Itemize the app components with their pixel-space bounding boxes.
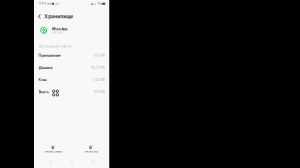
button[interactable]: Очистить кэш (72, 140, 110, 157)
button[interactable]: Очистить данные (34, 140, 72, 157)
staticText: 2.24.21.80 (52, 31, 63, 34)
staticText: Очистить кэш (84, 150, 98, 153)
staticText: Кэш (38, 78, 46, 82)
staticText: Данные (38, 65, 52, 70)
staticText: 1,43 МБ (93, 78, 105, 82)
button[interactable]: Домой (67, 158, 77, 167)
staticText: Хранилище (44, 13, 73, 19)
button[interactable]: Данные (34, 62, 109, 74)
button[interactable]: WhatsApp (34, 22, 109, 38)
staticText: Всего (38, 90, 48, 94)
staticText: 46 (97, 2, 101, 5)
staticText: Очистить данные (44, 150, 62, 153)
staticText: Использовано места (38, 45, 71, 48)
button[interactable]: Последние приложения (88, 158, 98, 167)
staticText: WhatsApp (52, 27, 68, 31)
staticText: Приложение (38, 53, 60, 58)
staticText: 157 МБ (94, 54, 105, 57)
staticText: 178 МБ (94, 90, 105, 94)
button[interactable]: Кэш (34, 74, 109, 86)
button[interactable]: Назад (45, 158, 55, 167)
button[interactable]: Всего (34, 86, 109, 98)
staticText: 19,22 МБ (91, 66, 105, 70)
staticText: 11:04 (39, 2, 46, 5)
button[interactable]: Приложение (34, 49, 109, 62)
button[interactable]: Назад (34, 9, 44, 24)
